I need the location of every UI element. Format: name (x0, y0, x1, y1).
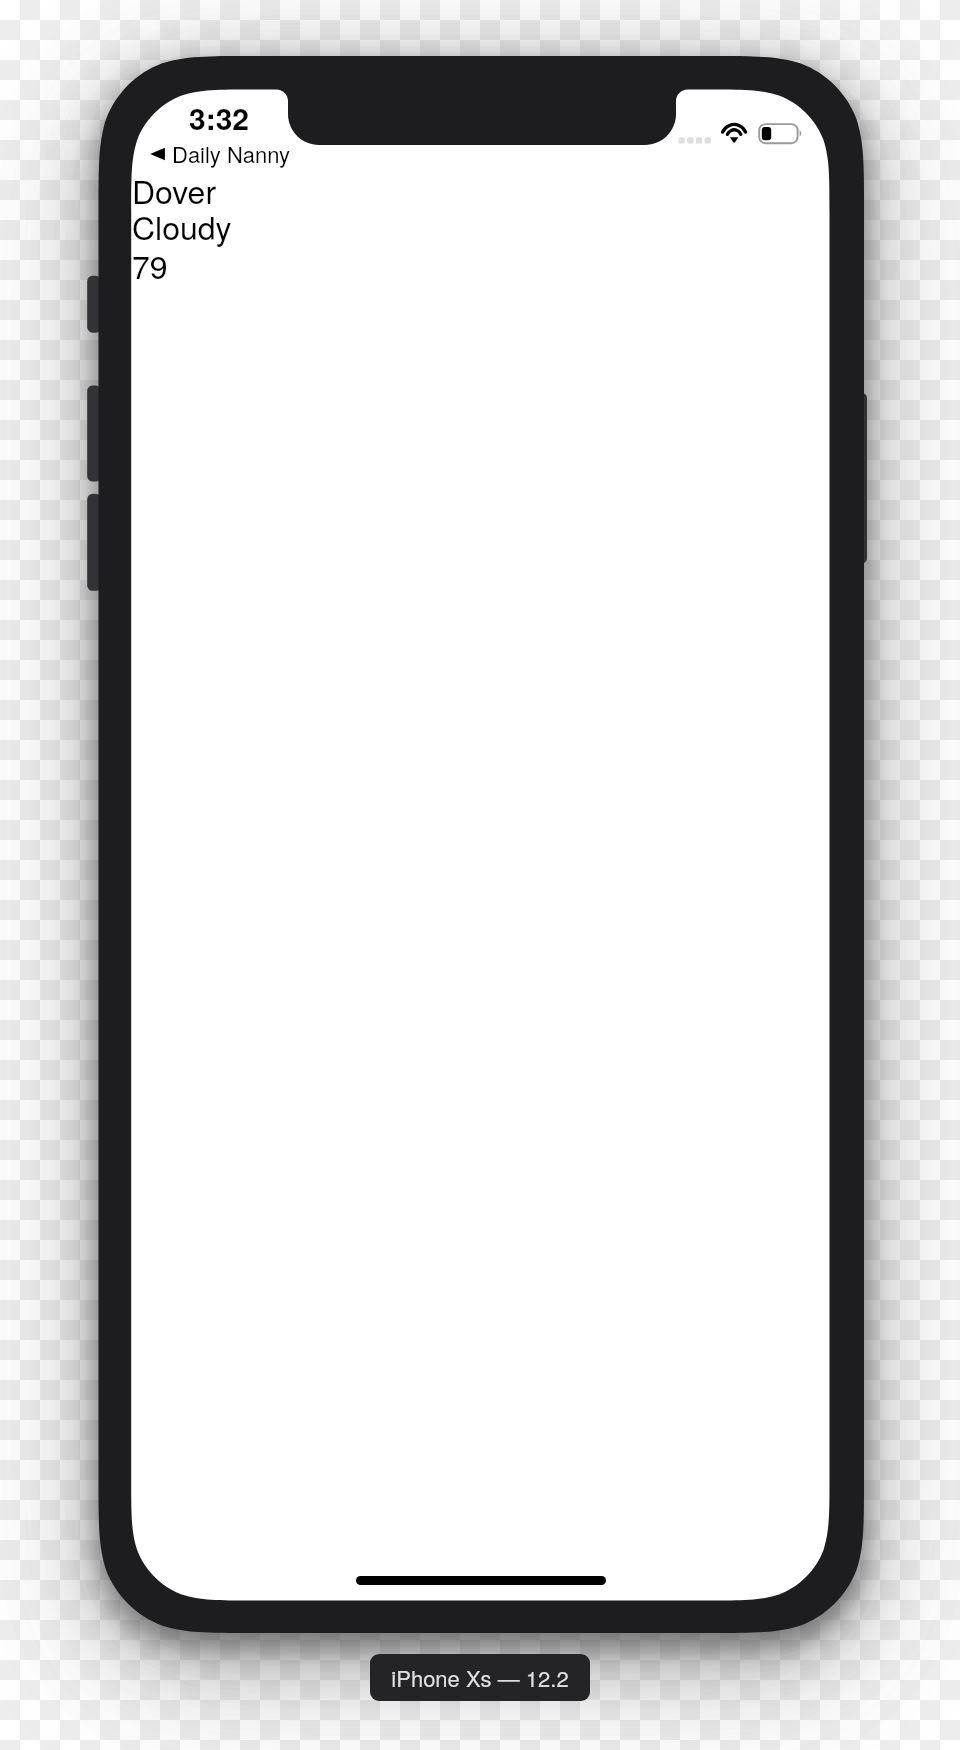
staticText: 3:32 (189, 96, 250, 139)
staticText: 79 (132, 242, 168, 288)
other: Back to Daily Nanny (148, 143, 167, 165)
staticText: iPhone Xs — 12.2 (391, 1662, 569, 1694)
button[interactable]: Back to Daily Nanny (148, 138, 290, 170)
staticText: Daily Nanny (172, 138, 290, 170)
staticText: Dover (132, 167, 217, 213)
staticText: Cloudy (132, 203, 232, 249)
button[interactable]: iPhone Xs — 12.2 (370, 1654, 590, 1701)
